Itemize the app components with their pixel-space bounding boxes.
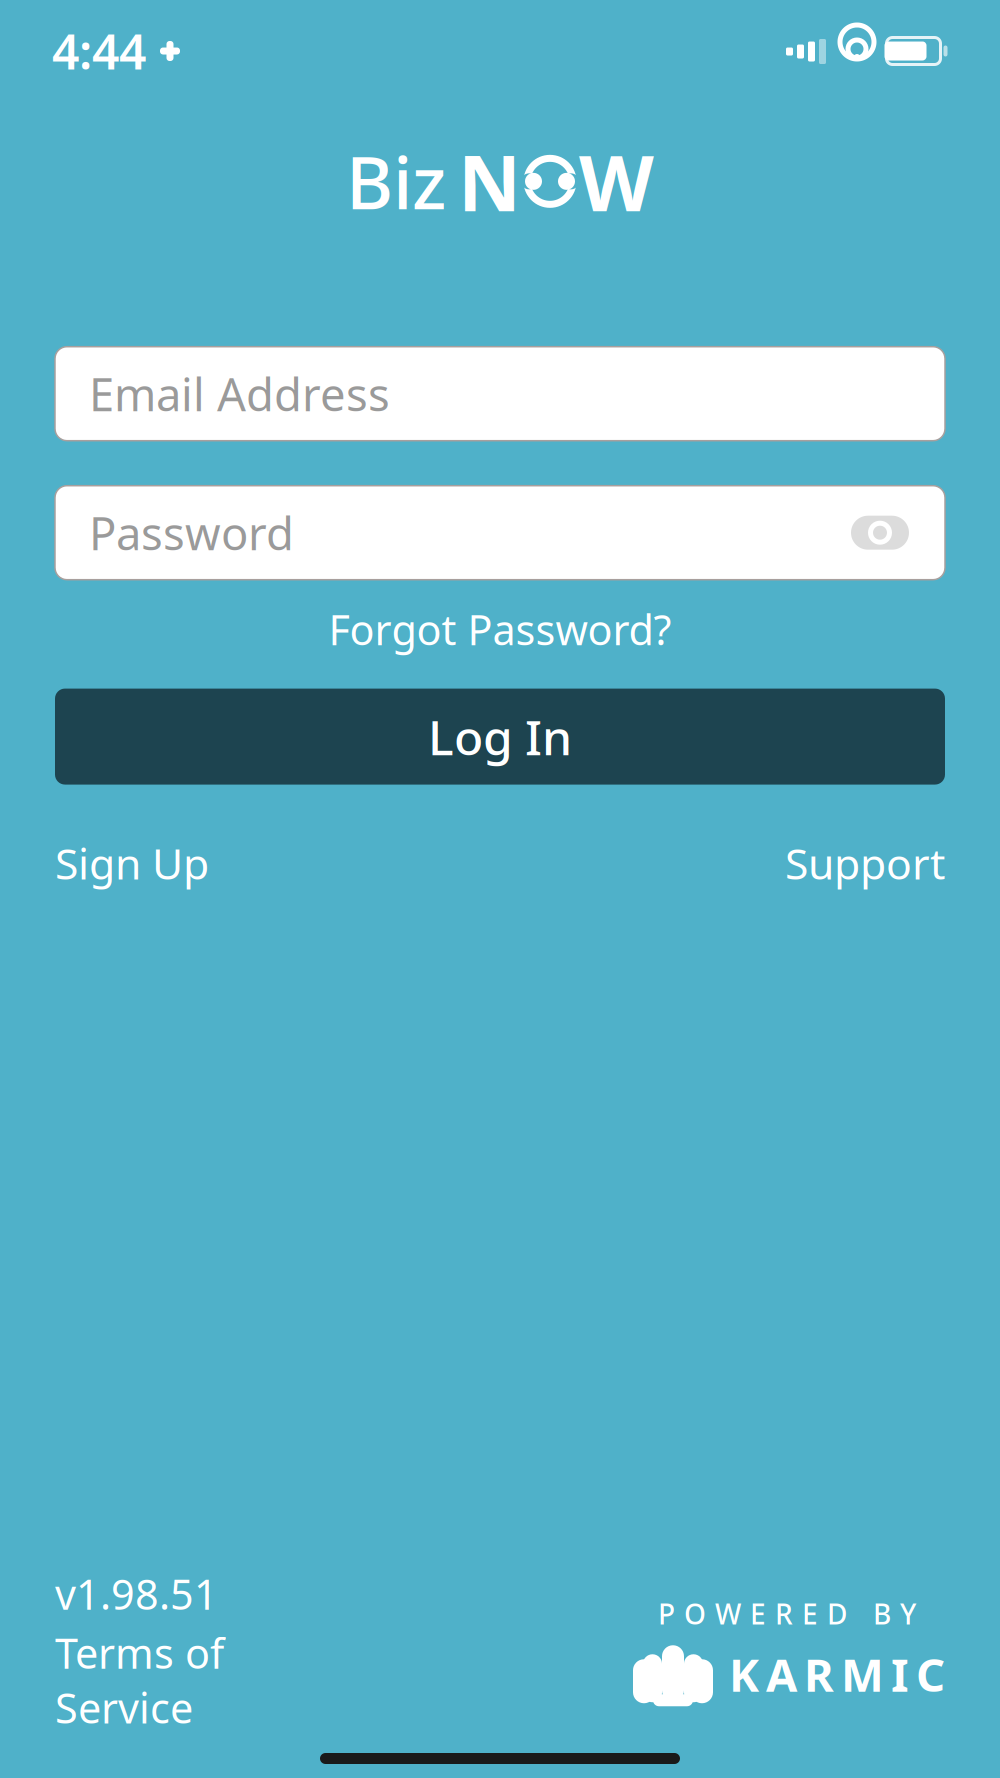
- staticText: B: [873, 1595, 891, 1632]
- staticText: E: [750, 1595, 766, 1632]
- button[interactable]: Log In: [55, 689, 945, 785]
- staticText: W: [579, 130, 654, 233]
- staticText: R: [804, 1644, 834, 1704]
- button[interactable]: Support: [785, 827, 945, 899]
- staticText: R: [775, 1595, 793, 1632]
- button[interactable]: Forgot Password?: [314, 596, 685, 663]
- staticText: Email Address: [89, 364, 390, 424]
- staticText: N: [458, 130, 521, 233]
- staticText: P: [658, 1595, 675, 1632]
- staticText: v1.98.51: [55, 1566, 218, 1621]
- staticText: W: [715, 1595, 741, 1632]
- staticText: E: [802, 1595, 818, 1632]
- staticText: Password: [89, 503, 294, 563]
- staticText: Sign Up: [55, 835, 209, 891]
- staticText: I: [891, 1644, 909, 1704]
- button[interactable]: Sign Up: [55, 827, 209, 899]
- button[interactable]: Email Address: [55, 347, 945, 441]
- staticText: Biz: [346, 133, 446, 229]
- staticText: C: [916, 1644, 945, 1704]
- staticText: 4:44: [52, 19, 146, 83]
- button[interactable]: Terms of Service: [55, 1625, 342, 1735]
- staticText: M: [841, 1644, 884, 1704]
- staticText: Terms of Service: [55, 1625, 224, 1735]
- staticText: Support: [785, 835, 945, 891]
- staticText: Log In: [428, 705, 572, 768]
- button[interactable]: Show password: [849, 511, 911, 555]
- staticText: D: [827, 1595, 847, 1632]
- staticText: A: [766, 1644, 797, 1704]
- staticText: K: [729, 1644, 759, 1704]
- staticText: O: [684, 1595, 706, 1632]
- staticText: Forgot Password?: [328, 602, 671, 657]
- staticText: Y: [900, 1595, 916, 1632]
